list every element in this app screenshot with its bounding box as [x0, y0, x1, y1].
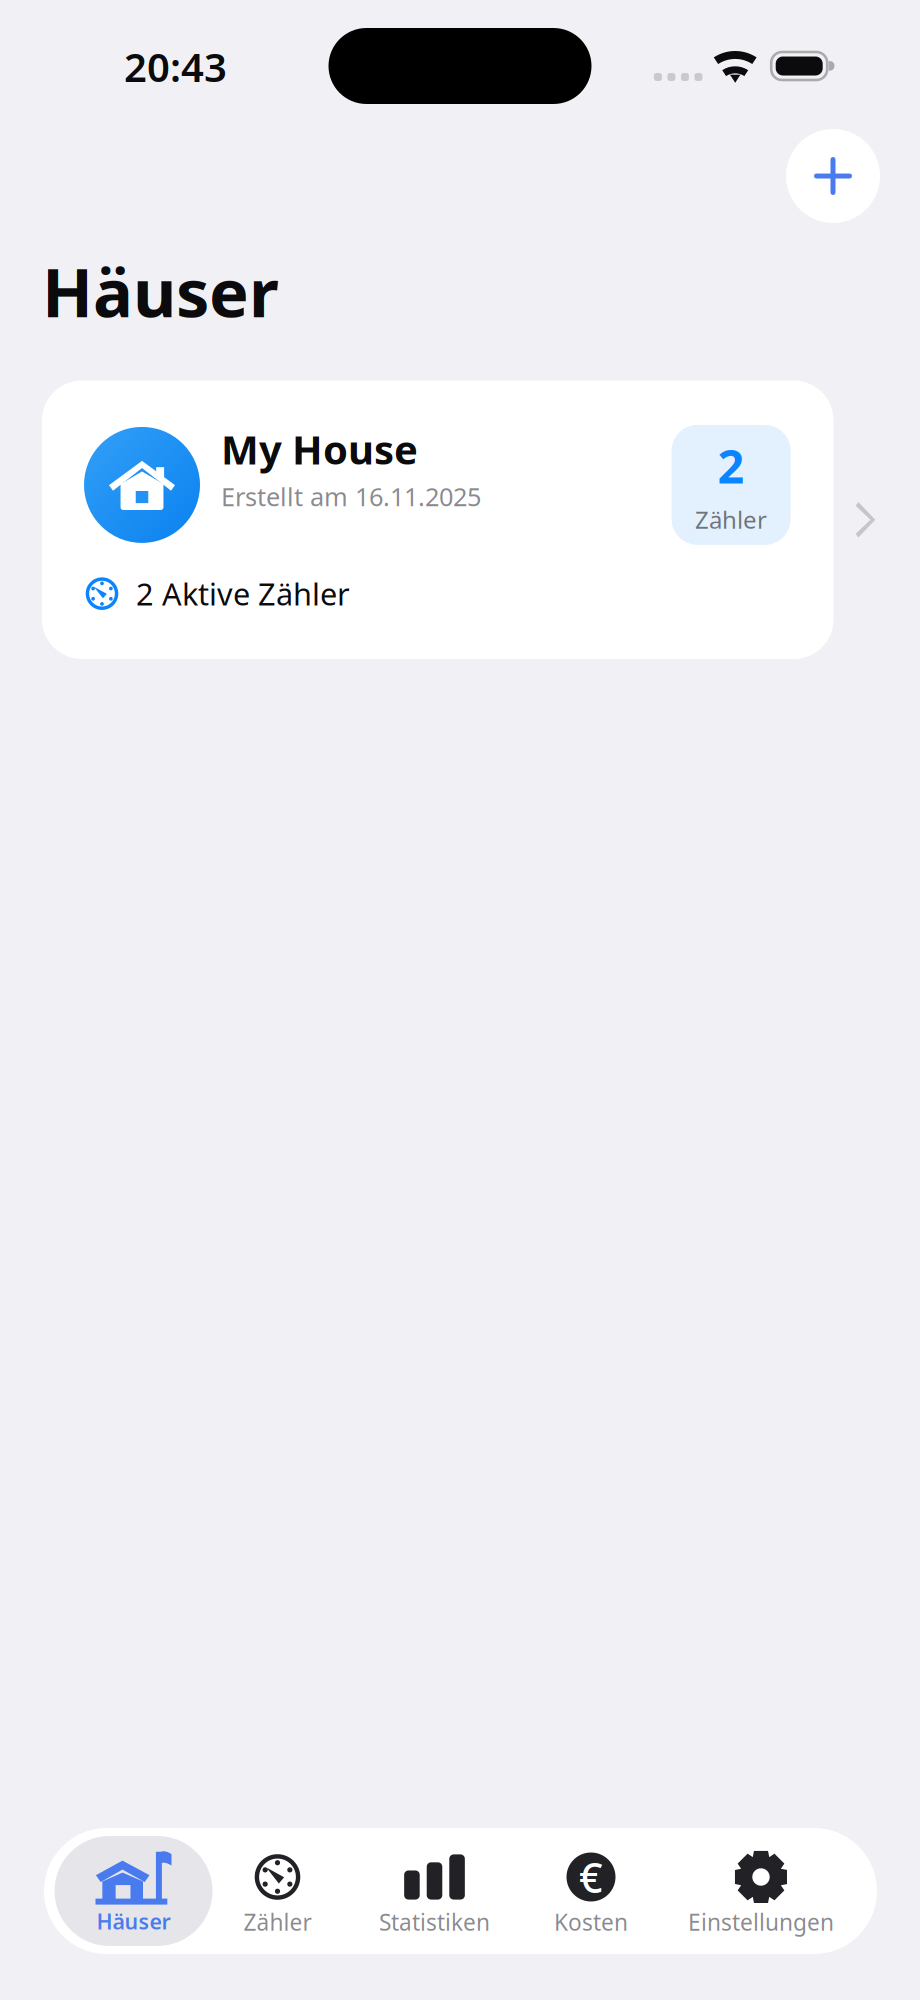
button[interactable]: Haus hinzufügen: [786, 129, 880, 223]
button[interactable]: €: [526, 1836, 655, 1946]
staticText: Zähler: [695, 503, 767, 535]
staticText: My House: [221, 422, 418, 476]
button[interactable]: Statistiken: [342, 1836, 526, 1946]
staticText: Einstellungen: [688, 1907, 834, 1937]
staticText: 2 Aktive Zähler: [136, 573, 350, 614]
staticText: 20:43: [124, 40, 227, 93]
button[interactable]: My House: [42, 380, 834, 659]
staticText: 2: [718, 434, 745, 496]
staticText: Kosten: [554, 1907, 628, 1937]
button[interactable]: Einstellungen: [655, 1836, 866, 1946]
button[interactable]: Häuser: [54, 1836, 212, 1946]
staticText: Statistiken: [379, 1907, 490, 1937]
staticText: Häuser: [42, 247, 279, 335]
staticText: €: [579, 1850, 603, 1904]
staticText: Häuser: [96, 1907, 170, 1935]
button[interactable]: Zähler: [212, 1836, 342, 1946]
staticText: Erstellt am 16.11.2025: [221, 480, 481, 513]
staticText: Zähler: [243, 1907, 311, 1937]
